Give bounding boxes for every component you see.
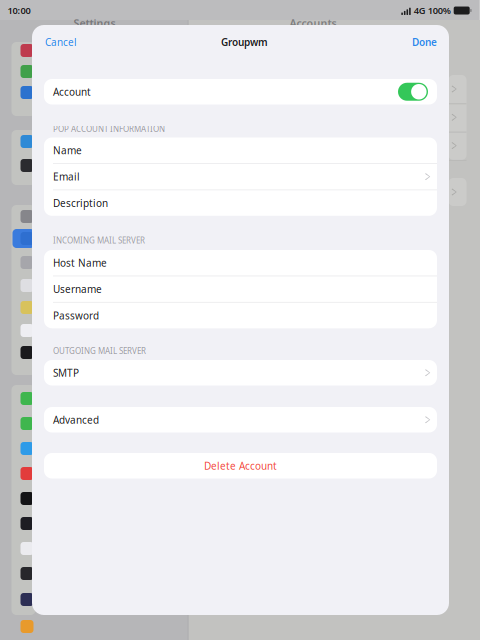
staticText: 4G 100%	[414, 4, 451, 17]
button[interactable]: SMTP	[44, 360, 437, 385]
staticText: Accounts	[289, 16, 336, 30]
button[interactable]: Advanced	[44, 407, 437, 432]
staticText: Cancel	[45, 35, 77, 49]
button[interactable]: Password	[44, 303, 437, 328]
staticText: Account	[53, 85, 91, 98]
button[interactable]: Host Name	[44, 250, 437, 275]
staticText: Settings	[73, 16, 115, 30]
staticText: 10:00	[7, 4, 30, 17]
staticText: Name	[53, 143, 82, 157]
staticText: Password	[53, 309, 99, 322]
button[interactable]: Username	[44, 276, 437, 302]
button[interactable]: Delete Account	[44, 453, 437, 478]
button[interactable]: Cancel	[32, 27, 87, 57]
staticText: Description	[53, 196, 108, 210]
button[interactable]: Description	[44, 190, 437, 216]
staticText: Email	[53, 170, 80, 183]
staticText: Groupwm	[221, 35, 268, 49]
button[interactable]: Email	[44, 164, 437, 189]
staticText: Host Name	[53, 256, 107, 269]
button[interactable]: Done	[402, 27, 449, 57]
staticText: Delete Account	[204, 459, 277, 472]
staticText: OUTGOING MAIL SERVER	[53, 346, 146, 356]
staticText: SMTP	[53, 366, 79, 379]
staticText: INCOMING MAIL SERVER	[53, 235, 145, 246]
button[interactable]: Name	[44, 137, 437, 163]
staticText: POP ACCOUNT INFORMATION	[53, 124, 165, 134]
staticText: Advanced	[53, 413, 99, 426]
staticText: Username	[53, 282, 102, 296]
staticText: Done	[412, 35, 437, 49]
